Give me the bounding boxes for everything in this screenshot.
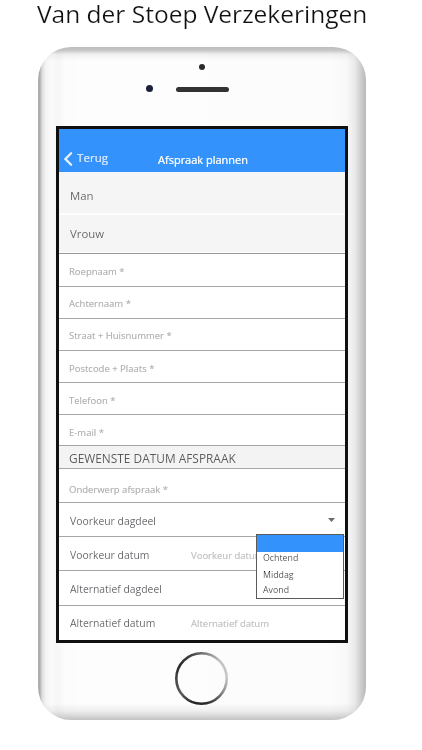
- button[interactable]: Terug: [60, 145, 76, 172]
- staticText: Vrouw: [70, 226, 105, 242]
- staticText: Alternatief datum: [70, 616, 156, 630]
- staticText: Middag: [263, 569, 294, 581]
- staticText: Achternaam *: [69, 297, 131, 310]
- staticText: Roepnaam *: [69, 265, 125, 278]
- button[interactable]: [59, 415, 345, 445]
- staticText: GEWENSTE DATUM AFSPRAAK: [69, 450, 236, 466]
- staticText: Telefoon *: [69, 394, 116, 407]
- button[interactable]: [257, 567, 344, 582]
- staticText: Voorkeur dagdeel: [70, 514, 156, 528]
- button[interactable]: [59, 286, 345, 318]
- staticText: Avond: [263, 584, 290, 596]
- button[interactable]: [59, 605, 345, 639]
- button[interactable]: [59, 253, 345, 286]
- button[interactable]: [59, 571, 345, 605]
- staticText: Afspraak plannen: [158, 152, 249, 167]
- staticText: Straat + Huisnummer *: [69, 329, 172, 342]
- staticText: Onderwerp afspraak *: [69, 483, 169, 496]
- staticText: Voorkeur datum: [191, 549, 264, 562]
- staticText: Postcode + Plaats *: [69, 362, 155, 375]
- staticText: Voorkeur datum: [70, 548, 150, 562]
- staticText: Terug: [77, 150, 109, 166]
- button[interactable]: [59, 318, 345, 350]
- staticText: Alternatief dagdeel: [70, 582, 162, 596]
- button[interactable]: [59, 213, 345, 253]
- button[interactable]: [257, 552, 344, 567]
- staticText: Man: [70, 188, 94, 204]
- button[interactable]: Kies dagdeel: [323, 509, 340, 530]
- button[interactable]: [59, 350, 345, 382]
- button[interactable]: [257, 582, 344, 597]
- button[interactable]: [257, 535, 344, 552]
- button[interactable]: [76, 145, 109, 172]
- button[interactable]: Home: [175, 652, 228, 705]
- staticText: Alternatief datum: [191, 617, 269, 630]
- button[interactable]: [59, 536, 345, 570]
- staticText: E-mail *: [69, 426, 104, 439]
- button[interactable]: [59, 172, 345, 214]
- button[interactable]: [59, 502, 345, 536]
- button[interactable]: [59, 469, 345, 503]
- staticText: Van der Stoep Verzekeringen: [37, 0, 368, 30]
- button[interactable]: [59, 382, 345, 415]
- staticText: Ochtend: [263, 552, 299, 564]
